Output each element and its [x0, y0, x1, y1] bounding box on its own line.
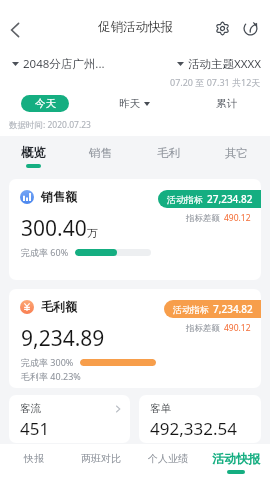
button[interactable]: 毛利 — [134, 138, 202, 174]
staticText: 其它 — [225, 146, 248, 160]
staticText: 活动快报 — [212, 451, 260, 466]
staticText: 完成率 300% — [21, 356, 74, 368]
staticText: 492,332.54 — [150, 417, 237, 440]
staticText: 销售 — [89, 146, 112, 160]
staticText: 07.20 至 07.31 共12天 — [170, 76, 261, 88]
staticText: 490.12 — [224, 322, 251, 334]
staticText: 今天 — [35, 97, 56, 110]
button[interactable]: 活动快报 — [202, 444, 270, 480]
staticText: 7,234.82 — [213, 302, 253, 316]
button[interactable]: 累计 — [216, 97, 237, 110]
staticText: 毛利额 — [41, 299, 77, 314]
button[interactable]: 客单 — [139, 395, 261, 443]
button[interactable]: 快报 — [0, 444, 67, 480]
staticText: 490.12 — [224, 212, 251, 224]
staticText: 两班对比 — [81, 452, 121, 465]
staticText: 促销活动快报 — [98, 19, 173, 35]
button[interactable]: 2048分店广州... — [12, 56, 105, 72]
staticText: 2048分店广州... — [23, 56, 105, 72]
button[interactable]: Back — [0, 15, 29, 44]
button[interactable]: 其它 — [202, 138, 270, 174]
staticText: 活动指标 — [167, 194, 203, 205]
staticText: 累计 — [216, 97, 237, 110]
button[interactable]: 两班对比 — [67, 444, 134, 480]
button[interactable]: 今天 — [21, 95, 69, 112]
staticText: 完成率 60% — [21, 246, 69, 258]
button[interactable]: 概览 — [0, 138, 67, 174]
staticText: 活动指标 — [173, 304, 209, 315]
button[interactable]: 个人业绩 — [134, 444, 202, 480]
staticText: 昨天 — [119, 97, 140, 110]
staticText: 概览 — [21, 145, 46, 161]
staticText: 客单 — [150, 402, 171, 415]
button[interactable]: 昨天 — [119, 97, 150, 110]
staticText: 客流 — [20, 402, 41, 415]
button[interactable]: 活动主题XXXX — [177, 56, 261, 72]
staticText: 数据时间: 2020.07.23 — [9, 119, 91, 131]
button[interactable]: 毛利额 — [9, 289, 261, 388]
staticText: 300.40 — [21, 214, 87, 243]
button[interactable]: 销售 — [67, 138, 134, 174]
button[interactable]: Refresh — [241, 19, 260, 38]
staticText: 毛利 — [157, 146, 180, 160]
staticText: 万 — [87, 226, 98, 240]
staticText: 指标差额 — [186, 213, 220, 224]
staticText: 活动主题XXXX — [188, 56, 261, 72]
staticText: 销售额 — [41, 189, 77, 204]
button[interactable]: 客流 — [9, 395, 130, 443]
staticText: 9,234.89 — [21, 324, 105, 353]
button[interactable]: 销售额 — [9, 179, 261, 280]
staticText: 451 — [20, 417, 50, 440]
staticText: 27,234.82 — [207, 192, 253, 206]
button[interactable]: Settings — [213, 19, 232, 38]
staticText: 快报 — [24, 452, 44, 465]
staticText: 毛利率 40.23% — [21, 370, 81, 382]
staticText: 指标差额 — [186, 323, 220, 334]
staticText: 个人业绩 — [148, 452, 188, 465]
